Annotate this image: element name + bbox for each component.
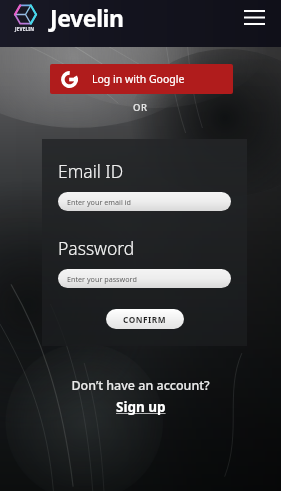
button[interactable]: Enter your email id — [58, 192, 231, 211]
staticText: Enter your password — [67, 274, 137, 284]
staticText: OR — [133, 101, 148, 114]
button[interactable]: Sign up — [112, 397, 170, 417]
button[interactable]: Open menu — [237, 0, 271, 34]
staticText: Email ID — [58, 159, 124, 183]
staticText: Jevelin — [50, 2, 124, 33]
staticText: JEVELIN — [15, 26, 35, 32]
staticText: CONFIRM — [123, 314, 167, 325]
button[interactable]: CONFIRM — [106, 309, 184, 329]
button[interactable]: Jevelin home — [10, 2, 40, 32]
staticText: Log in with Google — [92, 72, 185, 86]
staticText: Sign up — [116, 398, 166, 416]
staticText: Password — [58, 236, 135, 260]
button[interactable]: Enter your password — [58, 269, 231, 288]
staticText: Enter your email id — [67, 197, 131, 207]
staticText: Don’t have an account? — [71, 377, 210, 394]
button[interactable]: Log in with Google — [50, 64, 233, 94]
